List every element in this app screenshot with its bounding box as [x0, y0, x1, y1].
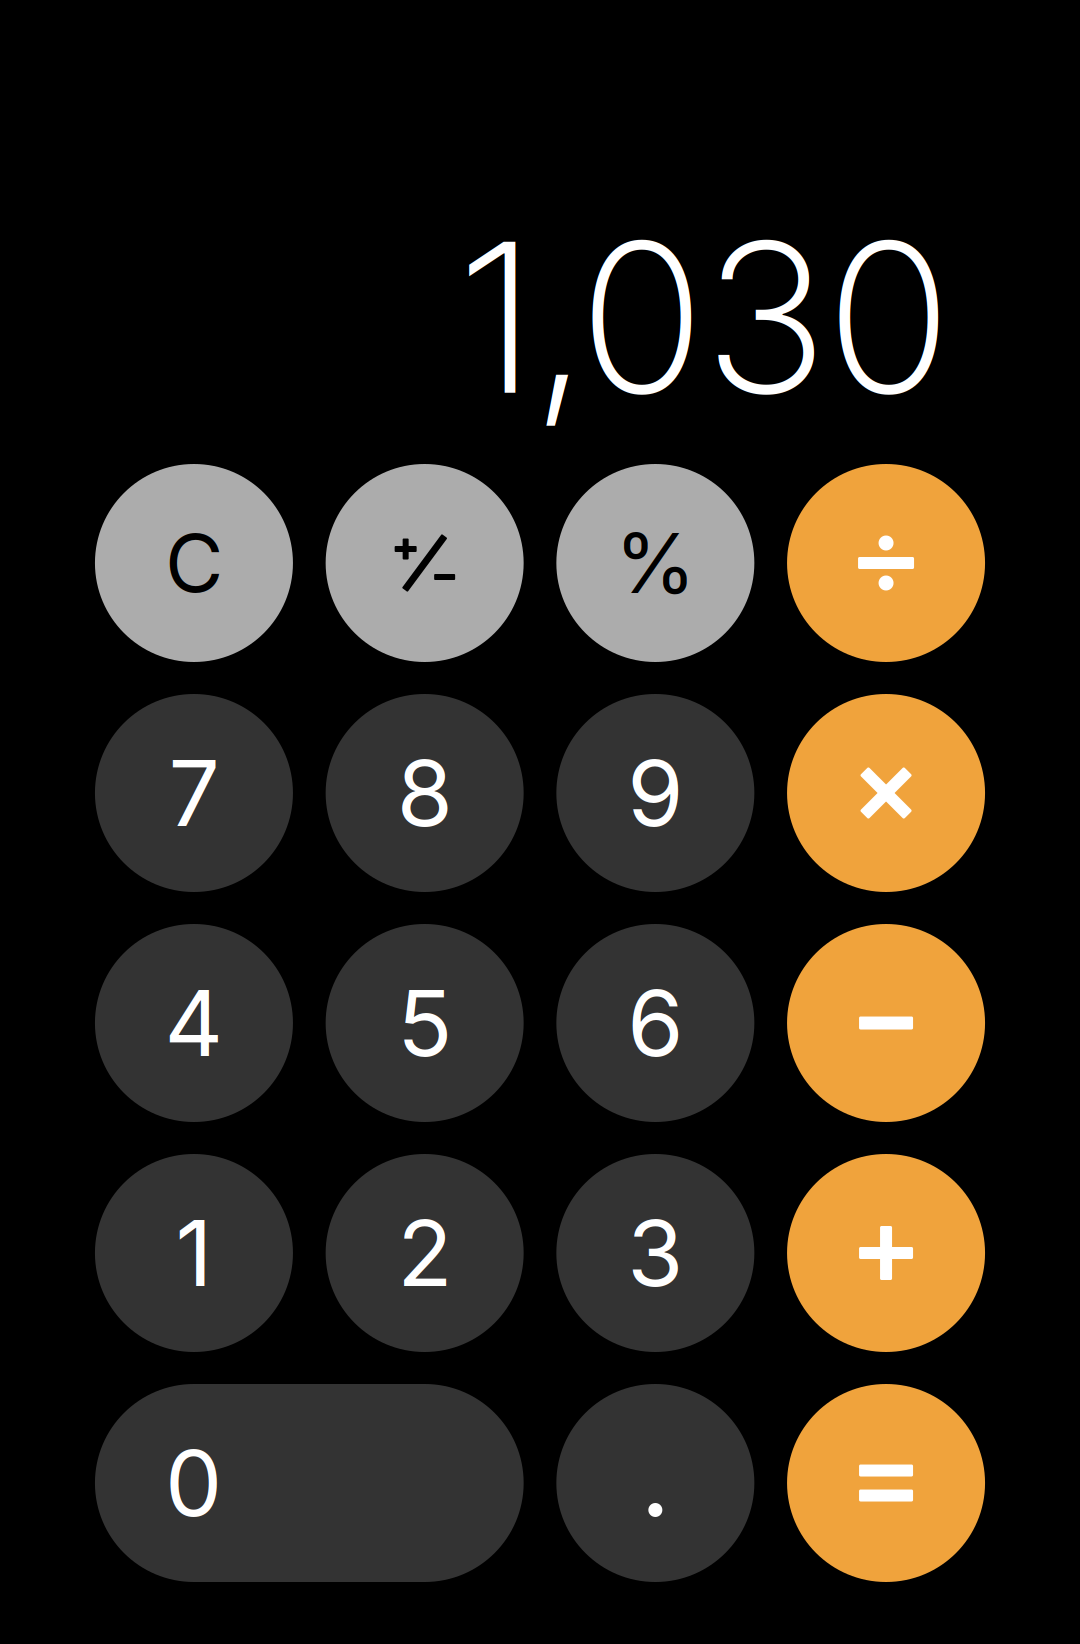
staticText: 9 [627, 738, 683, 848]
staticText: 5 [397, 968, 452, 1078]
button[interactable]: 0 [95, 1384, 524, 1582]
staticText: 1,030 [459, 191, 950, 443]
staticText: 4 [164, 968, 223, 1078]
button[interactable]: C [95, 464, 293, 662]
staticText: 6 [627, 968, 683, 1078]
staticText: C [165, 515, 223, 611]
button[interactable]: 3 [556, 1154, 754, 1352]
button[interactable]: Divide [787, 464, 985, 662]
button[interactable]: Multiply [787, 694, 985, 892]
button[interactable]: Add [787, 1154, 985, 1352]
button[interactable]: 6 [556, 924, 754, 1122]
button[interactable]: % [556, 464, 754, 662]
staticText: 1 [175, 1198, 212, 1308]
staticText: % [615, 513, 696, 613]
staticText: 7 [168, 738, 219, 848]
button[interactable]: Toggle sign [326, 464, 524, 662]
button[interactable]: 7 [95, 694, 293, 892]
button[interactable]: 2 [326, 1154, 524, 1352]
staticText: 2 [397, 1198, 452, 1308]
staticText: 8 [397, 738, 453, 848]
staticText: 3 [627, 1198, 683, 1308]
staticText: 0 [165, 1428, 222, 1538]
button[interactable]: 1 [95, 1154, 293, 1352]
button[interactable]: Equals [787, 1384, 985, 1582]
button[interactable]: 5 [326, 924, 524, 1122]
button[interactable]: 8 [326, 694, 524, 892]
button[interactable]: 9 [556, 694, 754, 892]
button[interactable]: Subtract [787, 924, 985, 1122]
button[interactable]: 4 [95, 924, 293, 1122]
button[interactable]: Decimal point [556, 1384, 754, 1582]
